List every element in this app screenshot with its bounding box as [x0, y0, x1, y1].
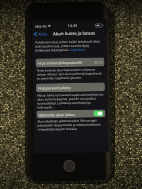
staticText: elisa 4G: [35, 24, 47, 29]
staticText: Akku: [38, 31, 48, 36]
staticText: Akun enimmäiskapasiteetti: [37, 60, 83, 65]
staticText: Optimoitu akun lataus: [38, 112, 75, 117]
button[interactable]: Optimoitu akun lataus: [93, 110, 103, 117]
staticText: Akkusi tukee normaalia huippusuorituskyk…: [37, 92, 104, 110]
staticText: Akun kunto ja lataus: [53, 30, 96, 37]
button[interactable]: Home: [63, 160, 75, 172]
staticText: Tämä ilmaisee akun kapasiteetin suhteess…: [37, 67, 104, 81]
button[interactable]: Optimoitu akun lataus: [36, 109, 105, 119]
staticText: 65 %: [94, 59, 102, 64]
button[interactable]: Huippusuorituskyky: [36, 82, 105, 93]
staticText: 14.34: [68, 23, 78, 28]
staticText: Huippusuorituskyky: [38, 85, 71, 90]
button[interactable]: Akku: [34, 31, 50, 37]
staticText: Akun käyttöiän pidentämiseksi iPhone opp…: [37, 118, 105, 132]
button[interactable]: Akun enimmäiskapasiteetti: [35, 57, 104, 68]
staticText: Puhelimen akut, kuten kaikki ladattavat …: [35, 39, 104, 53]
